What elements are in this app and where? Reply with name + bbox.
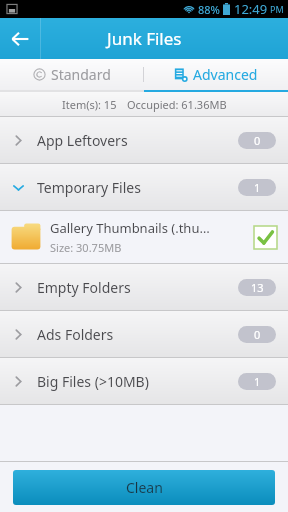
staticText: 12:49 <box>234 0 268 18</box>
button[interactable]: Clean <box>13 470 275 505</box>
staticText: App Leftovers <box>37 131 238 150</box>
button[interactable]: Ads Folders <box>0 311 288 357</box>
button[interactable]: Big Files (>10MB) <box>0 358 288 404</box>
staticText: 88% <box>198 2 220 17</box>
button[interactable]: Empty Folders <box>0 264 288 310</box>
staticText: Advanced <box>193 65 258 84</box>
staticText: Occupied: 61.36MB <box>127 97 227 112</box>
button[interactable]: Temporary Files <box>0 164 288 210</box>
button[interactable]: App Leftovers <box>0 117 288 163</box>
button[interactable]: Standard <box>0 59 143 90</box>
staticText: 1 <box>254 180 261 195</box>
staticText: Ads Folders <box>37 325 238 344</box>
staticText: 1 <box>254 374 261 389</box>
staticText: PM <box>270 3 284 15</box>
staticText: Empty Folders <box>37 278 238 297</box>
button[interactable]: Gallery Thumbnails (.thu… <box>0 211 288 263</box>
staticText: Temporary Files <box>37 178 238 197</box>
staticText: Big Files (>10MB) <box>37 372 238 391</box>
staticText: Junk Files <box>107 27 182 50</box>
staticText: Standard <box>51 65 111 84</box>
staticText: 13 <box>251 280 264 295</box>
button[interactable]: Selected <box>254 226 277 249</box>
staticText: 0 <box>254 327 261 342</box>
staticText: Gallery Thumbnails (.thu… <box>50 219 210 237</box>
button[interactable]: Back <box>0 18 40 59</box>
staticText: 0 <box>254 133 261 148</box>
button[interactable]: Advanced <box>144 59 288 90</box>
staticText: Clean <box>126 478 163 497</box>
staticText: Size: 30.75MB <box>50 240 122 255</box>
staticText: Item(s): 15 <box>62 97 117 112</box>
